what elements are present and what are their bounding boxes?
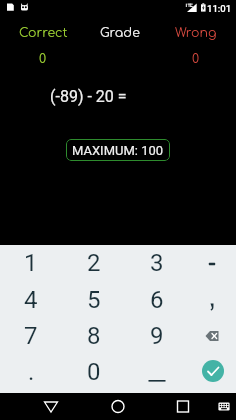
button[interactable]: Grade <box>80 26 160 66</box>
staticText: Wrong <box>175 26 217 40</box>
staticText: 4 <box>24 286 38 314</box>
staticText: Correct <box>19 26 68 40</box>
button[interactable]: MAXIMUM: 100 <box>66 139 170 161</box>
button[interactable]: Correct <box>3 26 83 66</box>
button[interactable]: 7 <box>3 318 59 354</box>
button[interactable]: 0 <box>66 354 122 390</box>
staticText: 2 <box>87 249 101 277</box>
staticText: MAXIMUM: 100 <box>72 143 164 158</box>
staticText: 7 <box>24 322 38 350</box>
staticText: 11:01 <box>207 3 232 14</box>
button[interactable]: Comma <box>184 283 236 319</box>
button[interactable]: 1 <box>3 245 59 281</box>
button[interactable]: Switch keyboard <box>211 393 236 420</box>
staticText: 0 <box>87 358 101 386</box>
button[interactable]: 9 <box>129 318 185 354</box>
button[interactable]: Recents <box>170 393 196 420</box>
button[interactable]: 4 <box>3 282 59 318</box>
staticText: 5 <box>87 286 101 314</box>
staticText: 6 <box>150 286 164 314</box>
staticText: 8 <box>87 322 101 350</box>
button[interactable]: 6 <box>129 282 185 318</box>
staticText: 9 <box>150 322 164 350</box>
staticText: . <box>28 358 35 386</box>
staticText: 3 <box>150 249 164 277</box>
button[interactable]: . <box>3 354 59 390</box>
staticText: (-89) - 20 = <box>50 87 127 106</box>
button[interactable]: Wrong <box>156 26 236 66</box>
staticText: 0 <box>39 52 47 66</box>
staticText: Grade <box>100 26 140 40</box>
button[interactable]: Back <box>38 393 64 420</box>
button[interactable]: Home <box>105 393 131 420</box>
button[interactable]: Enter <box>202 360 224 382</box>
button[interactable]: Underscore <box>129 354 185 390</box>
button[interactable]: Backspace <box>184 318 236 354</box>
button[interactable]: 3 <box>129 245 185 281</box>
staticText: 1 <box>24 249 38 277</box>
button[interactable]: 2 <box>66 245 122 281</box>
staticText: 0 <box>192 52 200 66</box>
button[interactable]: 8 <box>66 318 122 354</box>
button[interactable]: 5 <box>66 282 122 318</box>
button[interactable]: Minus <box>184 246 236 282</box>
